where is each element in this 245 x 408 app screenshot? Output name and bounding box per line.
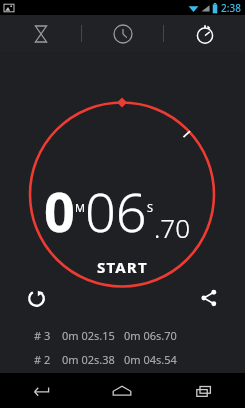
button[interactable]: # 3 — [34, 328, 211, 343]
staticText: 2:38 — [221, 1, 241, 15]
staticText: 0 — [44, 174, 75, 248]
button[interactable]: Recent apps — [163, 373, 245, 408]
staticText: M — [75, 200, 85, 215]
other: Timer — [31, 24, 51, 44]
button[interactable]: # 1 — [34, 376, 211, 391]
staticText: START — [97, 257, 148, 277]
staticText: 0m 02s.15 — [62, 328, 124, 343]
staticText: 0m 04s.54 — [124, 352, 177, 367]
button[interactable]: Share — [195, 284, 223, 312]
other: Stopwatch — [195, 24, 215, 44]
button[interactable]: # 2 — [34, 352, 211, 367]
button[interactable]: Timer — [0, 15, 81, 52]
button[interactable]: Reset — [22, 284, 50, 312]
staticText: # 1 — [34, 376, 62, 391]
staticText: .70 — [154, 210, 191, 245]
button[interactable]: Stopwatch — [164, 15, 245, 52]
button[interactable]: Clock — [82, 15, 163, 52]
other: Clock — [113, 24, 133, 44]
button[interactable]: Home — [81, 373, 163, 408]
staticText: S — [147, 200, 154, 215]
button[interactable]: Back — [0, 373, 81, 408]
staticText: 0m 02s.15 — [62, 376, 124, 391]
staticText: # 2 — [34, 352, 62, 367]
staticText: 0m 02s.38 — [62, 352, 124, 367]
staticText: 0m 06s.70 — [124, 328, 177, 343]
staticText: 0m 02s.15 — [124, 376, 177, 391]
staticText: 06 — [85, 174, 147, 248]
staticText: # 3 — [34, 328, 62, 343]
button[interactable]: START — [97, 257, 148, 277]
